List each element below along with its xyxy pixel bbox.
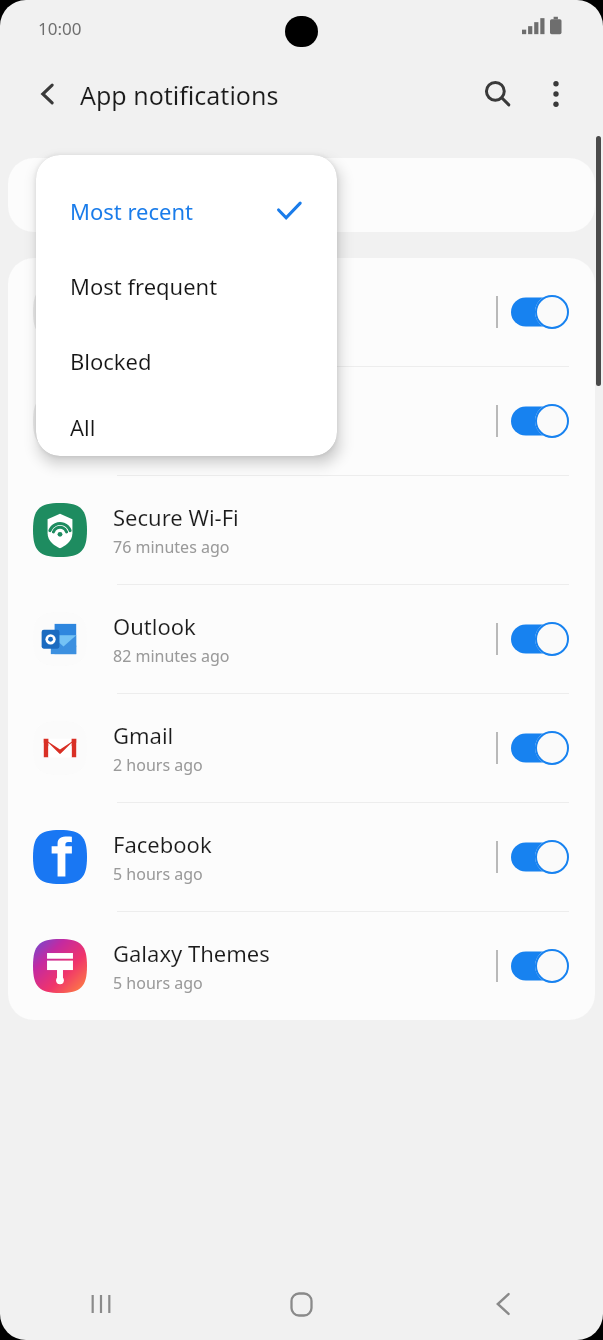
- staticText: All: [70, 412, 96, 442]
- button[interactable]: Gmail: [8, 694, 595, 802]
- button[interactable]: Back: [402, 1268, 603, 1340]
- staticText: Galaxy Themes: [113, 938, 270, 968]
- button[interactable]: Blocked: [36, 323, 337, 398]
- button[interactable]: Home: [201, 1268, 402, 1340]
- button[interactable]: Secure Wi-Fi: [8, 476, 595, 584]
- button[interactable]: Toggle notifications: [509, 617, 571, 661]
- button[interactable]: Search: [471, 67, 524, 120]
- button[interactable]: Most frequent: [36, 248, 337, 323]
- staticText: 76 minutes ago: [113, 536, 230, 558]
- button[interactable]: Toggle notifications: [509, 835, 571, 879]
- staticText: Secure Wi-Fi: [113, 502, 239, 532]
- staticText: Blocked: [70, 346, 152, 376]
- staticText: Facebook: [113, 829, 212, 859]
- staticText: 10:00: [38, 17, 82, 40]
- staticText: Most frequent: [70, 271, 218, 301]
- staticText: App notifications: [80, 78, 279, 112]
- button[interactable]: More options: [529, 67, 582, 120]
- button[interactable]: Outlook: [8, 585, 595, 693]
- button[interactable]: Phone: [8, 367, 595, 475]
- button[interactable]: Samsung Internet: [8, 258, 595, 366]
- staticText: 5 hours ago: [113, 863, 203, 885]
- button[interactable]: Recent apps: [0, 1268, 201, 1340]
- button[interactable]: Toggle notifications: [509, 726, 571, 770]
- button[interactable]: Galaxy Themes: [8, 912, 595, 1020]
- staticText: Gmail: [113, 720, 174, 750]
- button[interactable]: Back: [22, 68, 74, 120]
- staticText: Samsung Internet: [113, 284, 300, 314]
- button[interactable]: All: [36, 398, 337, 456]
- staticText: 82 minutes ago: [113, 645, 230, 667]
- staticText: 2 hours ago: [113, 754, 203, 776]
- button[interactable]: Toggle notifications: [509, 399, 571, 443]
- button[interactable]: Toggle notifications: [509, 944, 571, 988]
- button[interactable]: Toggle notifications: [509, 290, 571, 334]
- staticText: Most recent: [70, 196, 194, 226]
- staticText: Outlook: [113, 611, 196, 641]
- button[interactable]: Most recent: [36, 173, 337, 248]
- button[interactable]: [8, 158, 595, 232]
- staticText: 5 hours ago: [113, 972, 203, 994]
- button[interactable]: Facebook: [8, 803, 595, 911]
